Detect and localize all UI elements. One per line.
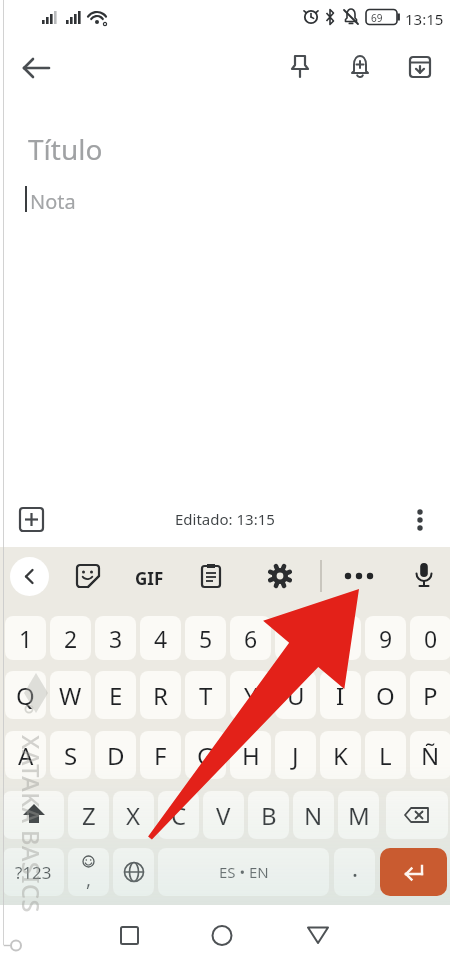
button[interactable]: S (50, 731, 91, 779)
button[interactable]: J (275, 731, 316, 779)
staticText: C (171, 799, 187, 832)
button[interactable]: X (113, 791, 154, 839)
button[interactable]: W (50, 671, 91, 719)
button[interactable]: O (365, 671, 406, 719)
staticText: Título (28, 130, 103, 168)
button[interactable] (3, 791, 64, 839)
button[interactable]: ?123 (3, 848, 64, 896)
button[interactable]: , (68, 848, 109, 896)
button[interactable]: 7 (275, 616, 316, 660)
button[interactable] (260, 556, 300, 596)
button[interactable]: 5 (185, 616, 226, 660)
button[interactable]: 4 (140, 616, 181, 660)
button[interactable]: U (275, 671, 316, 719)
staticText: X (126, 799, 141, 832)
button[interactable] (108, 913, 152, 957)
staticText: E (109, 679, 123, 712)
button[interactable]: Z (68, 791, 109, 839)
staticText: XATAKA BASICS (15, 735, 47, 913)
staticText: U (287, 679, 305, 712)
staticText: M (348, 799, 370, 832)
button[interactable]: K (320, 731, 361, 779)
button[interactable]: 9 (365, 616, 406, 660)
button[interactable]: . (334, 848, 375, 896)
button[interactable] (200, 913, 244, 957)
button[interactable] (280, 48, 320, 88)
staticText: Y (244, 679, 258, 712)
button[interactable]: 1 (5, 616, 46, 660)
button[interactable] (113, 848, 154, 896)
staticText: 2 (64, 623, 78, 654)
staticText: F (154, 739, 167, 772)
button[interactable] (340, 48, 380, 88)
button[interactable]: F (140, 731, 181, 779)
staticText: N (304, 799, 323, 832)
button[interactable] (400, 48, 440, 88)
button[interactable] (16, 45, 56, 85)
staticText: Nota (30, 188, 76, 215)
button[interactable]: 2 (50, 616, 91, 660)
button[interactable]: 8 (320, 616, 361, 660)
button[interactable]: P (410, 671, 450, 719)
staticText: O (376, 679, 395, 712)
button[interactable] (296, 913, 340, 957)
staticText: 1 (19, 623, 33, 654)
staticText: G (197, 739, 215, 772)
staticText: A (18, 739, 34, 772)
button[interactable]: R (140, 671, 181, 719)
staticText: Ñ (421, 739, 440, 772)
button[interactable]: L (365, 731, 406, 779)
button[interactable]: 6 (230, 616, 271, 660)
button[interactable]: Ñ (410, 731, 450, 779)
staticText: , (86, 866, 92, 892)
staticText: R (153, 679, 168, 712)
button[interactable]: 3 (95, 616, 136, 660)
button[interactable] (380, 848, 447, 896)
staticText: ?123 (15, 861, 52, 884)
button[interactable]: ES • EN (158, 848, 329, 896)
staticText: V (216, 799, 231, 832)
button[interactable]: Editado: 13:15 (175, 509, 275, 529)
staticText: B (261, 799, 277, 832)
button[interactable] (10, 497, 54, 541)
button[interactable]: M (338, 791, 379, 839)
staticText: . (352, 853, 358, 883)
button[interactable]: GIF (135, 567, 164, 590)
staticText: K (333, 739, 348, 772)
button[interactable] (404, 556, 444, 596)
button[interactable] (191, 556, 231, 596)
button[interactable]: H (230, 731, 271, 779)
button[interactable] (386, 791, 448, 839)
staticText: L (379, 739, 392, 772)
staticText: ES • EN (219, 862, 269, 882)
button[interactable]: D (95, 731, 136, 779)
button[interactable]: Y (230, 671, 271, 719)
staticText: T (199, 679, 213, 712)
button[interactable]: N (293, 791, 334, 839)
button[interactable]: I (320, 671, 361, 719)
staticText: S (64, 739, 78, 772)
staticText: J (292, 739, 299, 772)
button[interactable]: C (158, 791, 199, 839)
button[interactable] (10, 557, 49, 596)
button[interactable]: B (248, 791, 289, 839)
staticText: 5 (199, 623, 213, 654)
staticText: 6 (244, 623, 258, 654)
staticText: Q (16, 679, 35, 712)
button[interactable] (339, 556, 379, 596)
button[interactable]: G (185, 731, 226, 779)
button[interactable]: E (95, 671, 136, 719)
staticText: I (336, 679, 345, 712)
button[interactable]: V (203, 791, 244, 839)
staticText: W (59, 679, 82, 712)
staticText: Z (82, 799, 96, 832)
button[interactable] (68, 556, 108, 596)
staticText: H (242, 739, 260, 772)
button[interactable]: 0 (410, 616, 450, 660)
button[interactable]: A (5, 731, 46, 779)
staticText: D (107, 739, 125, 772)
button[interactable]: Q (5, 671, 46, 719)
button[interactable]: T (185, 671, 226, 719)
button[interactable] (398, 497, 442, 541)
